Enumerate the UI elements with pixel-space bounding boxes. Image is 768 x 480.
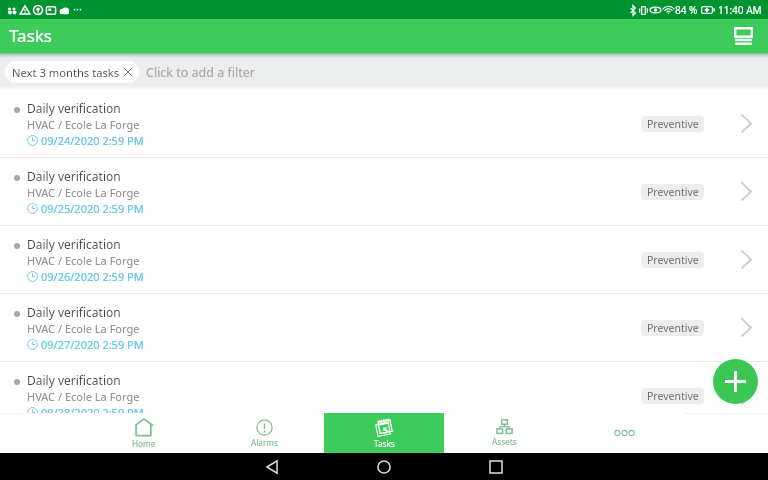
staticText: 09/26/2020 2:59 PM	[41, 269, 144, 284]
staticText: HVAC / Ecole La Forge	[27, 253, 140, 268]
staticText: 09/28/2020 2:59 PM	[41, 405, 144, 413]
staticText: Alarms	[251, 437, 278, 448]
staticText: Preventive	[647, 185, 699, 199]
staticText: 09/24/2020 2:59 PM	[41, 133, 144, 148]
button[interactable]: Back	[259, 454, 285, 480]
button[interactable]: Daily verification	[0, 362, 768, 413]
staticText: HVAC / Ecole La Forge	[27, 117, 140, 132]
staticText: 5	[382, 424, 389, 435]
button[interactable]: Recents	[483, 454, 509, 480]
staticText: 84 %	[675, 3, 698, 17]
staticText: 09/27/2020 2:59 PM	[41, 337, 144, 352]
button[interactable]: Alarms	[204, 413, 324, 453]
staticText: Daily verification	[27, 372, 121, 388]
staticText: Preventive	[647, 117, 699, 131]
button[interactable]: Home	[371, 454, 397, 480]
staticText: Daily verification	[27, 100, 121, 116]
button[interactable]: More	[564, 413, 684, 453]
button[interactable]: Home	[84, 413, 204, 453]
button[interactable]: Daily verification	[0, 158, 768, 226]
button[interactable]: 5	[324, 413, 444, 453]
staticText: Preventive	[647, 321, 699, 335]
staticText: Daily verification	[27, 168, 121, 184]
staticText: HVAC / Ecole La Forge	[27, 389, 140, 404]
staticText: Next 3 months tasks	[12, 65, 124, 80]
staticText: Tasks	[9, 24, 52, 47]
staticText: Home	[132, 438, 156, 449]
staticText: HVAC / Ecole La Forge	[27, 185, 140, 200]
button[interactable]: View options	[730, 23, 756, 49]
staticText: HVAC / Ecole La Forge	[27, 321, 140, 336]
button[interactable]: Daily verification	[0, 294, 768, 362]
staticText: Assets	[492, 436, 517, 447]
staticText: 11:40 AM	[718, 3, 762, 17]
button[interactable]: Daily verification	[0, 226, 768, 294]
staticText: Tasks	[374, 438, 395, 449]
staticText: Click to add a filter	[146, 64, 255, 81]
button[interactable]: Next 3 months tasks	[5, 61, 139, 83]
button[interactable]: Assets	[444, 413, 564, 453]
button[interactable]: Daily verification	[0, 90, 768, 158]
staticText: 09/25/2020 2:59 PM	[41, 201, 144, 216]
staticText: Preventive	[647, 389, 699, 403]
staticText: Daily verification	[27, 236, 121, 252]
staticText: Daily verification	[27, 304, 121, 320]
staticText: Preventive	[647, 253, 699, 267]
button[interactable]: Add task	[713, 359, 758, 404]
